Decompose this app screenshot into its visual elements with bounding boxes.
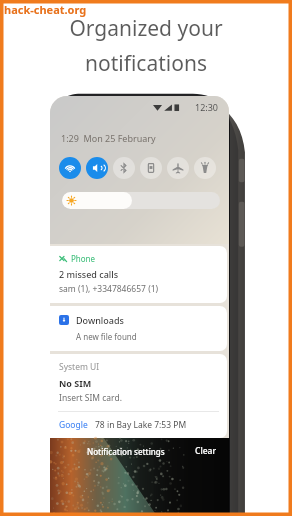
button[interactable]: Flashlight — [194, 157, 216, 179]
button[interactable]: Sound — [86, 157, 108, 179]
staticText: Clear — [195, 445, 217, 457]
button[interactable]: Phone — [50, 246, 227, 303]
button[interactable]: System UI — [50, 354, 227, 438]
staticText: System UI — [59, 361, 100, 373]
staticText: 12:30 — [195, 101, 219, 113]
staticText: Downloads — [76, 314, 124, 326]
staticText: notifications — [85, 49, 207, 78]
staticText: 78 in Bay Lake 7:53 PM — [95, 419, 187, 431]
staticText: hack-cheat.org — [4, 2, 87, 17]
staticText: 2 missed calls — [59, 268, 119, 280]
staticText: Phone — [71, 253, 96, 264]
staticText: Insert SIM card. — [59, 392, 122, 404]
button[interactable]: Clear — [193, 443, 219, 459]
button[interactable]: Airplane mode — [167, 157, 189, 179]
button[interactable]: Wi-Fi — [59, 157, 81, 179]
button[interactable] — [62, 192, 220, 209]
staticText: No SIM — [59, 377, 92, 389]
staticText: Organized your — [69, 14, 223, 43]
staticText: A new file found — [76, 331, 137, 342]
button[interactable]: Downloads — [50, 306, 227, 351]
button[interactable]: Bluetooth — [113, 157, 135, 179]
button[interactable]: Mobile data — [140, 157, 162, 179]
staticText: 1:29 Mon 25 February — [61, 132, 156, 144]
button[interactable]: Notification settings — [85, 444, 167, 459]
staticText: Notification settings — [87, 446, 165, 457]
button[interactable]: Google — [59, 419, 219, 431]
staticText: Google — [59, 419, 88, 431]
staticText: sam (1), +3347846657 (1) — [59, 283, 159, 295]
